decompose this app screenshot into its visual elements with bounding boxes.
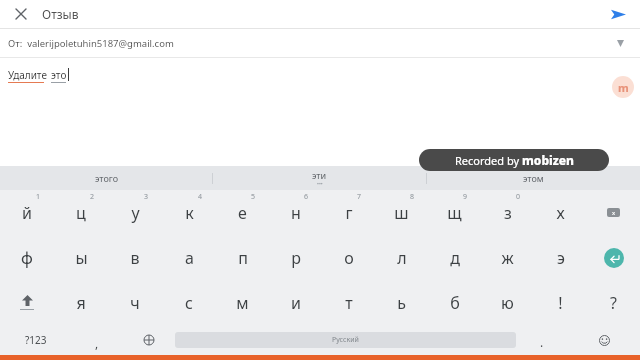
button[interactable]: ю: [481, 280, 534, 325]
button[interactable]: п: [216, 235, 269, 280]
staticText: эти: [312, 169, 327, 181]
button[interactable]: х: [534, 190, 587, 235]
button[interactable]: Русский: [175, 332, 516, 348]
staticText: е: [238, 202, 247, 224]
staticText: Русский: [332, 335, 359, 345]
button[interactable]: ,: [71, 325, 123, 355]
button[interactable]: д: [428, 235, 481, 280]
staticText: 7: [357, 192, 362, 202]
staticText: м: [236, 292, 249, 314]
button[interactable]: этого: [0, 166, 212, 190]
staticText: т: [345, 292, 353, 314]
button[interactable]: й: [0, 190, 54, 235]
staticText: ы: [75, 247, 88, 269]
button[interactable]: ф: [0, 235, 54, 280]
button[interactable]: с: [162, 280, 216, 325]
button[interactable]: Emoji: [568, 325, 640, 355]
staticText: ь: [397, 292, 406, 314]
staticText: л: [397, 247, 407, 269]
staticText: б: [450, 292, 460, 314]
button[interactable]: ?: [587, 280, 640, 325]
staticText: 9: [463, 192, 468, 202]
button[interactable]: з: [481, 190, 534, 235]
button[interactable]: ч: [108, 280, 162, 325]
button[interactable]: эти: [213, 166, 426, 190]
button[interactable]: Change language: [123, 325, 175, 355]
button[interactable]: т: [322, 280, 375, 325]
button[interactable]: в: [108, 235, 162, 280]
button[interactable]: б: [428, 280, 481, 325]
button[interactable]: я: [54, 280, 108, 325]
staticText: ж: [501, 247, 514, 269]
button[interactable]: .: [516, 325, 568, 355]
staticText: у: [131, 202, 140, 224]
button[interactable]: е: [216, 190, 269, 235]
staticText: а: [185, 247, 194, 269]
staticText: о: [344, 247, 354, 269]
button[interactable]: н: [269, 190, 322, 235]
staticText: н: [291, 202, 301, 224]
staticText: 5: [251, 192, 256, 202]
staticText: m: [618, 80, 629, 95]
staticText: з: [504, 202, 512, 224]
staticText: Recorded by: [455, 153, 522, 168]
button[interactable]: а: [162, 235, 216, 280]
staticText: 8: [410, 192, 415, 202]
staticText: г: [345, 202, 353, 224]
staticText: 2: [90, 192, 95, 202]
staticText: ч: [130, 292, 140, 314]
staticText: щ: [447, 202, 462, 224]
staticText: 0: [516, 192, 521, 202]
staticText: ц: [76, 202, 86, 224]
button[interactable]: ш: [375, 190, 428, 235]
button[interactable]: о: [322, 235, 375, 280]
button[interactable]: Backspace: [587, 190, 640, 235]
staticText: я: [76, 292, 86, 314]
staticText: Отзыв: [42, 6, 79, 22]
staticText: Удалите: [8, 68, 47, 82]
staticText: р: [291, 247, 301, 269]
button[interactable]: ж: [481, 235, 534, 280]
button[interactable]: у: [108, 190, 162, 235]
button[interactable]: Expand recipients: [610, 33, 630, 53]
staticText: ?123: [25, 333, 47, 347]
button[interactable]: и: [269, 280, 322, 325]
staticText: этом: [523, 172, 544, 184]
staticText: 1: [36, 192, 41, 202]
button[interactable]: Close: [10, 3, 32, 25]
button[interactable]: !: [534, 280, 587, 325]
staticText: этого: [95, 172, 118, 184]
staticText: это: [51, 68, 67, 82]
staticText: в: [130, 247, 140, 269]
staticText: •••: [317, 181, 323, 188]
staticText: 3: [144, 192, 149, 202]
staticText: э: [557, 247, 565, 269]
button[interactable]: щ: [428, 190, 481, 235]
button[interactable]: ы: [54, 235, 108, 280]
button[interactable]: этом: [427, 166, 640, 190]
button[interactable]: Enter: [587, 235, 640, 280]
staticText: !: [558, 292, 563, 314]
button[interactable]: ь: [375, 280, 428, 325]
button[interactable]: м: [216, 280, 269, 325]
staticText: ю: [501, 292, 514, 314]
staticText: x: [612, 209, 616, 217]
staticText: От: valerijpoletuhin5187@gmail.com: [8, 37, 174, 50]
button[interactable]: ?123: [0, 325, 71, 355]
button[interactable]: ц: [54, 190, 108, 235]
button[interactable]: к: [162, 190, 216, 235]
staticText: ш: [394, 202, 409, 224]
staticText: 4: [198, 192, 203, 202]
staticText: ,: [95, 335, 99, 351]
button[interactable]: э: [534, 235, 587, 280]
button[interactable]: Send: [606, 2, 630, 26]
button[interactable]: Shift: [0, 280, 54, 325]
button[interactable]: л: [375, 235, 428, 280]
staticText: п: [238, 247, 248, 269]
staticText: и: [291, 292, 301, 314]
button[interactable]: г: [322, 190, 375, 235]
staticText: д: [450, 247, 460, 269]
button[interactable]: Mobizen: [612, 76, 634, 98]
button[interactable]: р: [269, 235, 322, 280]
staticText: mobizen: [522, 152, 574, 168]
